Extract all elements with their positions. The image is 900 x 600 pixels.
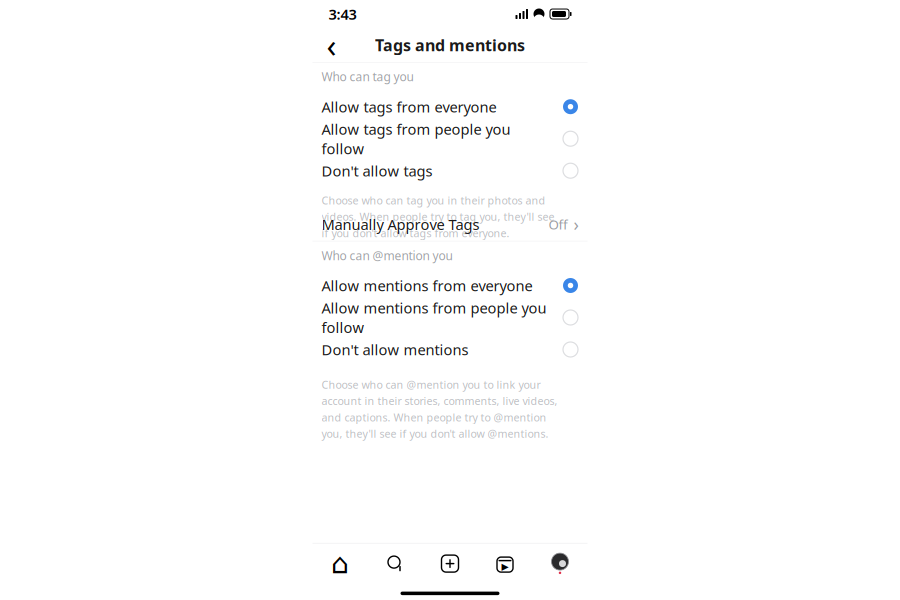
button[interactable]: Back <box>316 30 346 60</box>
staticText: 3:43 <box>328 4 356 24</box>
staticText: Allow mentions from people you follow <box>321 298 546 337</box>
staticText: Allow tags from people you follow <box>321 119 510 158</box>
staticText: › <box>573 213 578 236</box>
staticText: Tags and mentions <box>375 34 525 56</box>
button[interactable]: Reels <box>477 544 532 584</box>
button[interactable]: Don't allow mentions <box>312 333 587 365</box>
button[interactable]: Search <box>367 544 422 584</box>
staticText: ‹ <box>326 24 336 66</box>
button[interactable]: Don't allow tags <box>312 155 587 187</box>
button[interactable]: Home <box>312 544 367 584</box>
button[interactable]: Profile <box>532 544 587 584</box>
button[interactable]: Allow mentions from everyone <box>312 269 587 301</box>
staticText: ▶ <box>501 561 508 572</box>
button[interactable]: Manually Approve Tags <box>312 213 587 235</box>
staticText: Off <box>548 215 567 233</box>
staticText: Manually Approve Tags <box>321 214 479 234</box>
button[interactable]: Allow mentions from people you follow <box>312 301 587 333</box>
staticText: Don't allow mentions <box>321 340 468 359</box>
staticText: ⌂ <box>331 548 349 579</box>
button[interactable]: Allow tags from everyone <box>312 91 587 123</box>
staticText: Allow tags from everyone <box>321 97 496 116</box>
staticText: Who can tag you <box>321 69 413 85</box>
staticText: Allow mentions from everyone <box>321 276 532 295</box>
button[interactable]: Allow tags from people you follow <box>312 123 587 155</box>
staticText: Choose who can @mention you to link your… <box>321 377 557 441</box>
staticText: Choose who can tag you in their photos a… <box>321 193 554 240</box>
staticText: Who can @mention you <box>321 247 452 263</box>
button[interactable]: Create <box>422 544 477 584</box>
staticText: Don't allow tags <box>321 161 432 180</box>
